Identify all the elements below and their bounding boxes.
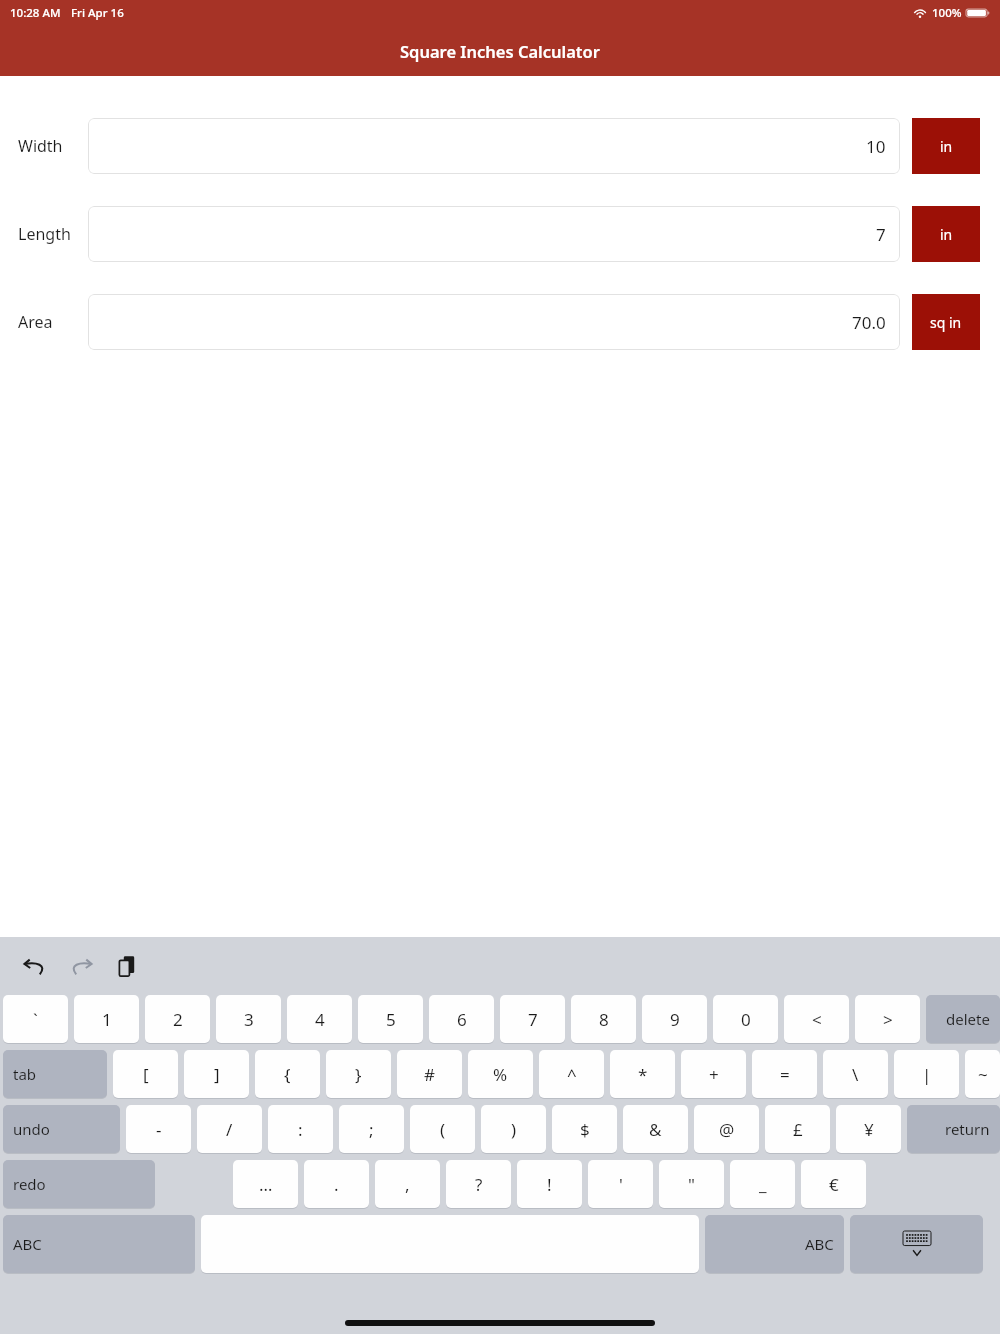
staticText: sq in <box>930 313 962 332</box>
staticText: } <box>355 1063 362 1086</box>
button[interactable]: … <box>233 1160 298 1208</box>
button[interactable]: 1 <box>74 995 139 1043</box>
staticText: > <box>883 1008 893 1031</box>
button[interactable]: ) <box>481 1105 546 1153</box>
button[interactable]: 2 <box>145 995 210 1043</box>
button[interactable]: $ <box>552 1105 617 1153</box>
button[interactable]: 70.0 <box>88 294 900 350</box>
staticText: ¥ <box>864 1118 874 1141</box>
staticText: 8 <box>599 1008 609 1031</box>
button[interactable]: % <box>468 1050 533 1098</box>
button[interactable]: ! <box>517 1160 582 1208</box>
staticText: ~ <box>978 1063 988 1086</box>
button[interactable]: " <box>659 1160 724 1208</box>
button[interactable]: 8 <box>571 995 636 1043</box>
staticText: ^ <box>567 1063 577 1086</box>
staticText: in <box>940 225 953 244</box>
staticText: ' <box>619 1173 623 1196</box>
button[interactable]: tab <box>3 1050 107 1098</box>
button[interactable]: 4 <box>287 995 352 1043</box>
staticText: delete <box>946 1009 990 1029</box>
button[interactable]: ¥ <box>836 1105 901 1153</box>
staticText: : <box>298 1118 303 1141</box>
staticText: { <box>284 1063 291 1086</box>
button[interactable]: { <box>255 1050 320 1098</box>
staticText: | <box>922 1063 932 1086</box>
button[interactable]: ABC <box>705 1215 844 1273</box>
staticText: * <box>638 1063 648 1086</box>
staticText: = <box>780 1063 790 1086</box>
button[interactable]: 10 <box>88 118 900 174</box>
button[interactable]: 7 <box>88 206 900 262</box>
button[interactable]: ; <box>339 1105 404 1153</box>
button[interactable]: in <box>912 118 980 174</box>
button[interactable]: . <box>304 1160 369 1208</box>
staticText: 10:28 AM <box>10 5 61 21</box>
staticText: " <box>688 1173 695 1196</box>
button[interactable]: undo <box>3 1105 120 1153</box>
button[interactable]: 6 <box>429 995 494 1043</box>
button[interactable]: # <box>397 1050 462 1098</box>
button[interactable]: ABC <box>3 1215 195 1273</box>
button[interactable]: | <box>894 1050 959 1098</box>
button[interactable]: 5 <box>358 995 423 1043</box>
staticText: / <box>226 1118 233 1141</box>
staticText: & <box>649 1118 662 1141</box>
button[interactable]: \ <box>823 1050 888 1098</box>
button[interactable]: ' <box>588 1160 653 1208</box>
staticText: Length <box>18 223 71 245</box>
button[interactable]: redo <box>3 1160 155 1208</box>
button[interactable]: ` <box>3 995 68 1043</box>
button[interactable]: * <box>610 1050 675 1098</box>
button[interactable]: - <box>126 1105 191 1153</box>
button[interactable]: 0 <box>713 995 778 1043</box>
staticText: € <box>829 1173 839 1196</box>
button[interactable]: ^ <box>539 1050 604 1098</box>
button[interactable]: ] <box>184 1050 249 1098</box>
button[interactable]: 3 <box>216 995 281 1043</box>
staticText: Fri Apr 16 <box>71 5 124 21</box>
staticText: # <box>424 1063 435 1086</box>
button[interactable]: Redo <box>64 949 98 983</box>
button[interactable]: [ <box>113 1050 178 1098</box>
button[interactable]: : <box>268 1105 333 1153</box>
button[interactable]: ( <box>410 1105 475 1153</box>
button[interactable]: return <box>907 1105 1000 1153</box>
button[interactable]: 7 <box>500 995 565 1043</box>
staticText: in <box>940 137 953 156</box>
button[interactable]: ~ <box>965 1050 1000 1098</box>
button[interactable]: = <box>752 1050 817 1098</box>
button[interactable]: / <box>197 1105 262 1153</box>
staticText: + <box>709 1063 719 1086</box>
staticText: ABC <box>13 1234 42 1254</box>
button[interactable]: < <box>784 995 849 1043</box>
button[interactable]: delete <box>926 995 1000 1043</box>
button[interactable]: @ <box>694 1105 759 1153</box>
button[interactable]: Undo <box>18 949 52 983</box>
staticText: … <box>259 1173 273 1196</box>
button[interactable]: ? <box>446 1160 511 1208</box>
staticText: ( <box>440 1118 446 1141</box>
button[interactable]: in <box>912 206 980 262</box>
staticText: 0 <box>741 1008 751 1031</box>
staticText: 7 <box>876 223 886 246</box>
button[interactable]: € <box>801 1160 866 1208</box>
button[interactable]: > <box>855 995 920 1043</box>
button[interactable]: & <box>623 1105 688 1153</box>
button[interactable]: , <box>375 1160 440 1208</box>
button[interactable]: Paste <box>110 949 144 983</box>
staticText: 3 <box>244 1008 254 1031</box>
staticText: 7 <box>528 1008 538 1031</box>
staticText: Square Inches Calculator <box>400 40 600 62</box>
button[interactable]: £ <box>765 1105 830 1153</box>
staticText: return <box>945 1119 990 1139</box>
button[interactable]: 9 <box>642 995 707 1043</box>
button[interactable]: sq in <box>912 294 980 350</box>
staticText: 5 <box>386 1008 396 1031</box>
button[interactable]: + <box>681 1050 746 1098</box>
button[interactable]: Hide keyboard <box>850 1215 983 1273</box>
button[interactable]: _ <box>730 1160 795 1208</box>
button[interactable]: } <box>326 1050 391 1098</box>
staticText: 100% <box>932 5 962 21</box>
